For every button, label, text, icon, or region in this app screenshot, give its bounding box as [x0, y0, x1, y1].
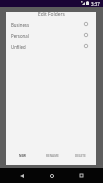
button[interactable]: Unfiled	[6, 41, 96, 52]
button[interactable]: DELETE	[73, 152, 88, 160]
staticText: Business	[11, 22, 30, 28]
button[interactable]: Back	[16, 170, 27, 181]
staticText: NEW	[19, 154, 27, 158]
button[interactable]: Home	[46, 170, 57, 181]
staticText: RENAME	[46, 154, 59, 158]
button[interactable]: RENAME	[44, 152, 61, 160]
button[interactable]: Business	[6, 19, 96, 30]
staticText: DELETE	[75, 154, 86, 158]
staticText: Unfiled	[11, 44, 26, 50]
button[interactable]: Personal	[6, 30, 96, 41]
staticText: Personal	[11, 33, 29, 39]
button[interactable]: NEW	[17, 152, 29, 160]
button[interactable]: Recents	[76, 170, 87, 181]
staticText: 3:37	[91, 1, 100, 7]
staticText: Edit Folders	[38, 11, 65, 17]
